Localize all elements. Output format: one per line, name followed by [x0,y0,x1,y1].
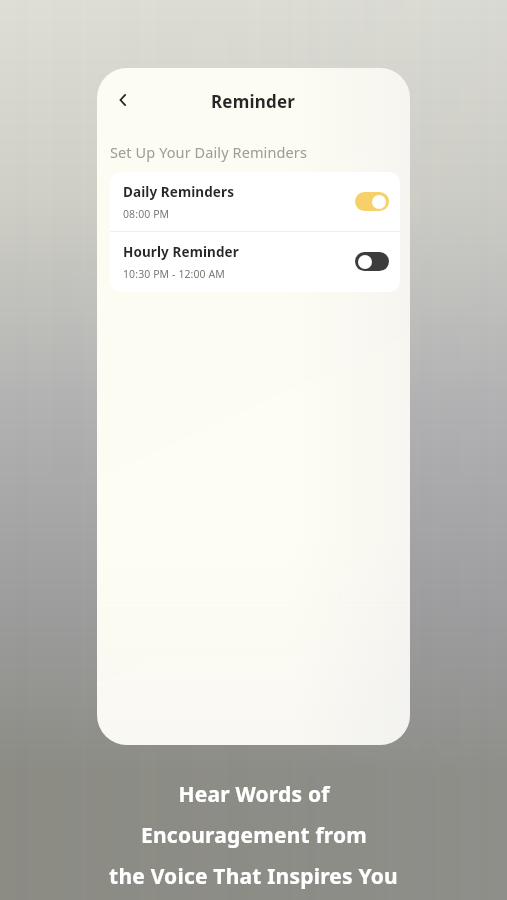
staticText: Daily Reminders [123,183,235,201]
staticText: Hourly Reminder [123,243,239,261]
button[interactable]: Daily Reminders [110,172,400,231]
staticText: 10:30 PM - 12:00 AM [123,267,225,281]
button[interactable]: Hourly Reminder [110,232,400,291]
staticText: Hear Words of [178,780,330,809]
staticText: Reminder [211,90,296,113]
staticText: Set Up Your Daily Reminders [110,142,307,162]
staticText: 08:00 PM [123,207,170,221]
staticText: Encouragement from [141,821,367,850]
button[interactable]: Toggle off [355,252,389,271]
staticText: the Voice That Inspires You [109,862,398,891]
button[interactable]: Toggle on [355,192,389,211]
button[interactable]: Back [105,82,141,118]
